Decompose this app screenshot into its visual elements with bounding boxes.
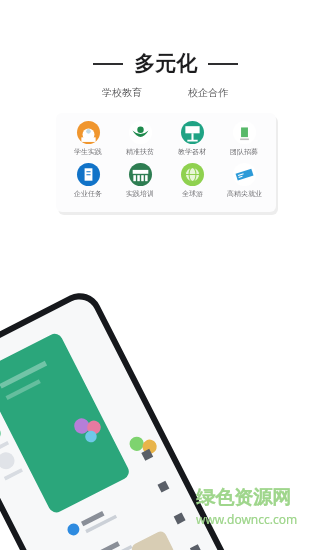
other: 教学器材 — [181, 121, 204, 144]
staticText: 企业任务 — [74, 189, 102, 198]
staticText: 绿色资源网 — [196, 486, 291, 510]
button[interactable]: 教学器材 — [167, 120, 217, 157]
staticText: 高精尖就业 — [227, 189, 262, 198]
staticText: 全球游 — [182, 189, 203, 198]
staticText: 实践培训 — [126, 189, 154, 198]
button[interactable]: 学生实践 — [63, 120, 113, 157]
other: 实践培训 — [129, 163, 152, 186]
button[interactable]: 团队招募 — [219, 120, 269, 157]
other: 团队招募 — [233, 121, 256, 144]
staticText: 学校教育 — [102, 86, 142, 99]
button[interactable]: 企业任务 — [63, 162, 113, 199]
other: 精准扶贫 — [129, 121, 152, 144]
staticText: 团队招募 — [230, 147, 258, 156]
other: 企业任务 — [77, 163, 100, 186]
staticText: 教学器材 — [178, 147, 206, 156]
staticText: www.downcc.com — [196, 511, 298, 527]
button[interactable]: 全球游 — [167, 162, 217, 199]
staticText: 学生实践 — [74, 147, 102, 156]
other: 学生实践 — [77, 121, 100, 144]
other: 全球游 — [181, 163, 204, 186]
button[interactable]: 实践培训 — [115, 162, 165, 199]
button[interactable]: 高精尖就业 — [219, 162, 269, 199]
staticText: 精准扶贫 — [126, 147, 154, 156]
other: 高精尖就业 — [233, 163, 256, 186]
button[interactable]: 精准扶贫 — [115, 120, 165, 157]
staticText: 多元化 — [134, 51, 197, 77]
staticText: 校企合作 — [188, 86, 228, 99]
